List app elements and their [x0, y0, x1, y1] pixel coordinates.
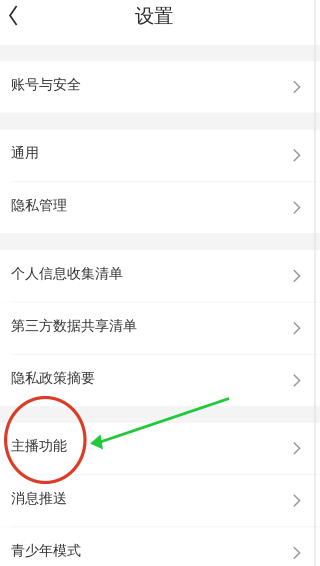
button[interactable]: 青少年模式	[0, 527, 320, 566]
button[interactable]: 消息推送	[0, 475, 320, 526]
staticText: 账号与安全	[11, 76, 81, 93]
staticText: 消息推送	[11, 489, 67, 507]
staticText: 隐私管理	[11, 196, 67, 214]
button[interactable]: 主播功能	[0, 423, 320, 474]
button[interactable]: 个人信息收集清单	[0, 250, 320, 302]
button[interactable]: 通用	[0, 130, 320, 181]
staticText: 青少年模式	[11, 542, 81, 559]
button[interactable]: 隐私管理	[0, 182, 320, 233]
button[interactable]: 隐私政策摘要	[0, 355, 320, 406]
staticText: 设置	[135, 4, 173, 28]
staticText: 个人信息收集清单	[11, 265, 123, 282]
staticText: 第三方数据共享清单	[11, 317, 137, 335]
staticText: 隐私政策摘要	[11, 369, 95, 387]
button[interactable]: 第三方数据共享清单	[0, 303, 320, 354]
staticText: 通用	[11, 144, 39, 162]
button[interactable]: Back	[0, 0, 34, 45]
button[interactable]: 账号与安全	[0, 61, 320, 113]
staticText: 主播功能	[11, 437, 67, 455]
